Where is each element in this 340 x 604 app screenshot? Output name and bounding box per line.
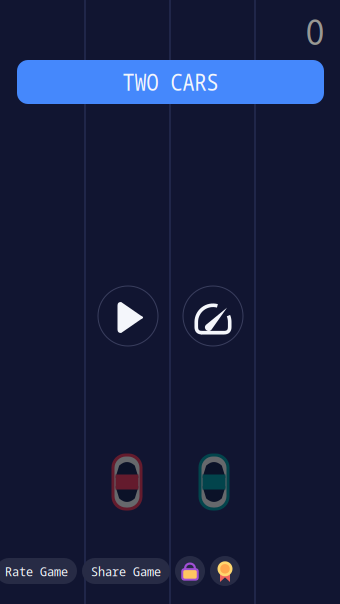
staticText: TWO CARS [122, 67, 218, 97]
button[interactable]: Speed [183, 286, 243, 346]
button[interactable]: TWO CARS [17, 60, 324, 104]
button[interactable]: Achievements [210, 556, 240, 586]
staticText: 0 [305, 10, 325, 52]
staticText: Share Game [91, 562, 161, 580]
staticText: Rate Game [5, 562, 68, 580]
button[interactable]: Play [98, 286, 158, 346]
button[interactable]: Store [175, 556, 205, 586]
button[interactable]: Share Game [82, 558, 170, 584]
button[interactable]: Rate Game [0, 558, 77, 584]
